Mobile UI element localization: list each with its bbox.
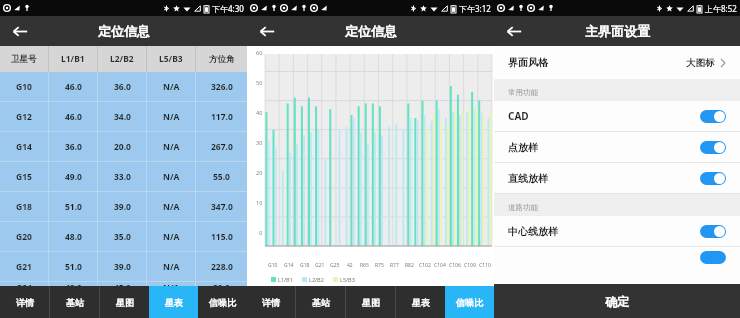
staticText: 48.0 bbox=[65, 282, 82, 286]
button[interactable]: 界面风格 bbox=[494, 46, 740, 79]
staticText: C109 bbox=[464, 262, 476, 269]
button[interactable]: 基站 bbox=[296, 286, 345, 318]
staticText: 星图 bbox=[116, 297, 134, 308]
staticText: R65 bbox=[360, 262, 369, 269]
staticText: 49.0 bbox=[65, 171, 82, 183]
staticText: G18 bbox=[300, 262, 310, 269]
staticText: G12 bbox=[16, 111, 32, 123]
staticText: 详情 bbox=[16, 297, 34, 308]
button[interactable]: 中心线放样 bbox=[494, 216, 740, 246]
button[interactable]: 星表 bbox=[396, 286, 445, 318]
staticText: C106 bbox=[449, 262, 461, 269]
staticText: 45.0 bbox=[114, 282, 131, 286]
staticText: 20 bbox=[256, 169, 263, 176]
staticText: 326.0 bbox=[211, 81, 233, 93]
button[interactable]: Back bbox=[0, 16, 40, 46]
staticText: 347.0 bbox=[211, 201, 233, 213]
staticText: 60 bbox=[256, 49, 263, 56]
staticText: N/A bbox=[163, 261, 180, 273]
staticText: 51.0 bbox=[65, 261, 82, 273]
staticText: 星表 bbox=[412, 297, 430, 308]
staticText: 51.0 bbox=[65, 201, 82, 213]
staticText: 主界面设置 bbox=[585, 23, 650, 39]
button[interactable]: Back bbox=[494, 16, 534, 46]
staticText: N/A bbox=[163, 141, 180, 153]
staticText: 大图标 bbox=[686, 57, 715, 69]
staticText: C110 bbox=[479, 262, 491, 269]
staticText: 信噪比 bbox=[456, 297, 483, 308]
staticText: C102 bbox=[419, 262, 431, 269]
staticText: L1/B1 bbox=[61, 53, 85, 65]
staticText: R82 bbox=[405, 262, 414, 269]
staticText: 34.0 bbox=[114, 111, 131, 123]
button[interactable]: 点放样 bbox=[494, 132, 740, 162]
staticText: G14 bbox=[284, 262, 294, 269]
staticText: 35.0 bbox=[114, 231, 131, 243]
staticText: L1/B1 bbox=[278, 276, 293, 283]
staticText: 定位信息 bbox=[345, 23, 397, 39]
staticText: 定位信息 bbox=[98, 23, 150, 39]
staticText: 基站 bbox=[66, 297, 84, 308]
staticText: L2/B2 bbox=[309, 276, 324, 283]
staticText: 39.0 bbox=[114, 201, 131, 213]
staticText: 信噪比 bbox=[209, 297, 236, 308]
staticText: 40 bbox=[256, 109, 263, 116]
staticText: 中心线放样 bbox=[508, 225, 558, 238]
staticText: 0 bbox=[259, 229, 263, 236]
staticText: R77 bbox=[390, 262, 399, 269]
staticText: 48.0 bbox=[65, 231, 82, 243]
staticText: 基站 bbox=[312, 297, 330, 308]
staticText: G18 bbox=[16, 201, 32, 213]
staticText: G10 bbox=[16, 81, 32, 93]
staticText: G15 bbox=[16, 171, 32, 183]
button[interactable]: 确定 bbox=[494, 284, 740, 318]
staticText: 直线放样 bbox=[508, 172, 548, 185]
staticText: G20 bbox=[16, 231, 32, 243]
staticText: 50 bbox=[256, 79, 263, 86]
staticText: 228.0 bbox=[211, 261, 233, 273]
staticText: 115.0 bbox=[211, 231, 233, 243]
button[interactable]: CAD bbox=[494, 101, 740, 131]
button[interactable]: 星表 bbox=[149, 286, 198, 318]
button[interactable]: 星图 bbox=[346, 286, 395, 318]
staticText: CAD bbox=[508, 109, 529, 123]
staticText: 36.0 bbox=[65, 141, 82, 153]
staticText: 点放样 bbox=[508, 141, 538, 154]
staticText: N/A bbox=[163, 231, 180, 243]
staticText: L2/B2 bbox=[110, 53, 134, 65]
staticText: 10 bbox=[256, 199, 263, 206]
staticText: G14 bbox=[16, 141, 32, 153]
staticText: 方位角 bbox=[209, 54, 235, 65]
staticText: L5/B3 bbox=[159, 53, 183, 65]
button[interactable]: Back bbox=[247, 16, 287, 46]
staticText: 267.0 bbox=[211, 141, 233, 153]
button[interactable]: 直线放样 bbox=[494, 163, 740, 193]
staticText: 道路功能 bbox=[508, 203, 538, 212]
button[interactable]: 信噪比 bbox=[445, 286, 494, 318]
staticText: G25 bbox=[330, 262, 340, 269]
staticText: L5/B3 bbox=[340, 276, 355, 283]
staticText: N/A bbox=[163, 282, 180, 286]
button[interactable]: 基站 bbox=[50, 286, 99, 318]
staticText: 20.0 bbox=[114, 141, 131, 153]
staticText: 下午4:30 bbox=[212, 3, 244, 14]
staticText: 常用功能 bbox=[508, 88, 538, 97]
staticText: 下午3:12 bbox=[459, 3, 491, 14]
button[interactable]: 星图 bbox=[100, 286, 149, 318]
staticText: N/A bbox=[163, 81, 180, 93]
staticText: R75 bbox=[375, 262, 384, 269]
button[interactable]: 详情 bbox=[247, 286, 295, 318]
staticText: 39.0 bbox=[213, 282, 230, 286]
staticText: 星图 bbox=[362, 297, 380, 308]
staticText: 36.0 bbox=[114, 81, 131, 93]
staticText: G21 bbox=[16, 261, 32, 273]
staticText: 33.0 bbox=[114, 171, 131, 183]
button[interactable]: 详情 bbox=[0, 286, 49, 318]
button[interactable]: 信噪比 bbox=[198, 286, 247, 318]
staticText: 55.0 bbox=[213, 171, 230, 183]
staticText: 卫星号 bbox=[11, 54, 37, 65]
staticText: N/A bbox=[163, 111, 180, 123]
staticText: 42 bbox=[347, 262, 353, 269]
staticText: 46.0 bbox=[65, 81, 82, 93]
staticText: 上午8:52 bbox=[705, 3, 737, 14]
